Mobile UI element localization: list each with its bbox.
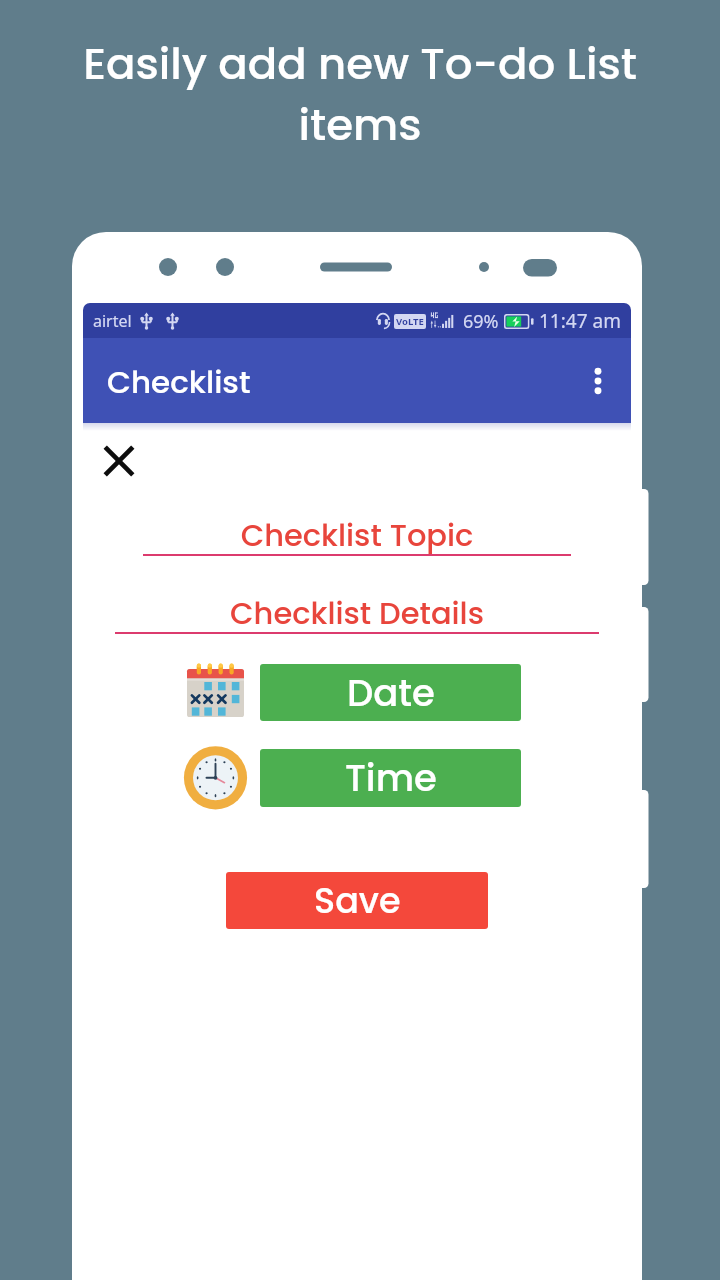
button[interactable]: Time (260, 749, 521, 807)
staticText: airtel (93, 310, 132, 332)
staticText: Time (345, 752, 437, 804)
staticText: Date (347, 667, 435, 719)
button[interactable]: Date (260, 664, 521, 721)
staticText: 69% (463, 309, 499, 334)
staticText: Checklist (107, 360, 251, 403)
staticText: Checklist Details (83, 592, 631, 635)
staticText: Save (314, 876, 401, 925)
button[interactable]: More options (574, 357, 622, 405)
staticText: VoLTE (396, 315, 424, 328)
staticText: Easily add new To-do List items (70, 33, 650, 155)
staticText: 11:47 am (539, 308, 621, 334)
button[interactable]: Save (226, 872, 488, 929)
staticText: Checklist Topic (83, 514, 631, 557)
button[interactable]: Close (95, 437, 143, 485)
